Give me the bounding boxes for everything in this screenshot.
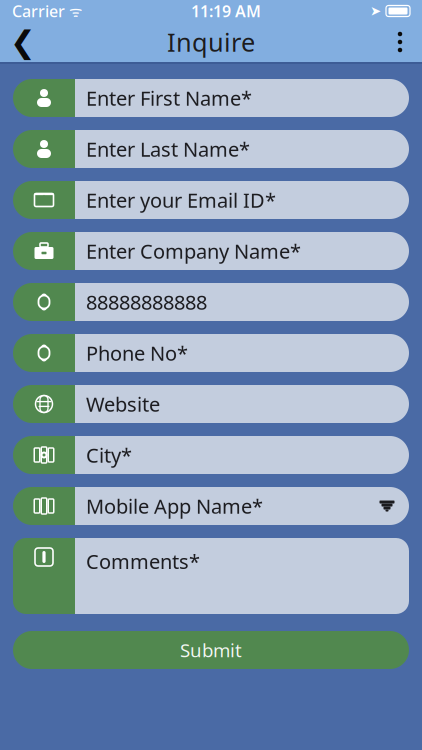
staticText: Submit (180, 638, 242, 662)
button[interactable]: Mobile App Name* (13, 487, 409, 525)
staticText: Enter Last Name* (86, 136, 250, 162)
button[interactable]: Website (13, 385, 409, 423)
staticText: Enter First Name* (86, 85, 252, 111)
staticText: ➤ (370, 3, 381, 18)
button[interactable]: 88888888888 (13, 283, 409, 321)
button[interactable]: Submit (13, 631, 409, 669)
staticText: Website (86, 391, 160, 417)
staticText: Inquire (167, 25, 255, 59)
staticText: Enter your Email ID* (86, 187, 276, 213)
button[interactable]: Enter First Name* (13, 79, 409, 117)
button[interactable]: City* (13, 436, 409, 474)
staticText: Enter Company Name* (86, 238, 301, 264)
staticText: 88888888888 (86, 289, 207, 315)
button[interactable]: Enter Company Name* (13, 232, 409, 270)
staticText: Phone No* (86, 340, 188, 366)
staticText: 11:19 AM (191, 0, 261, 22)
button[interactable]: More options (378, 22, 422, 62)
staticText: Carrier (12, 0, 65, 22)
staticText: Comments* (86, 548, 200, 575)
staticText: Mobile App Name* (86, 493, 263, 519)
staticText: ❮ (10, 25, 36, 59)
staticText: ᯤ (65, 1, 82, 21)
button[interactable]: Back (0, 22, 46, 62)
button[interactable]: Enter your Email ID* (13, 181, 409, 219)
button[interactable]: Enter Last Name* (13, 130, 409, 168)
button[interactable]: Comments* (13, 538, 409, 614)
staticText: City* (86, 442, 132, 468)
button[interactable]: Phone No* (13, 334, 409, 372)
